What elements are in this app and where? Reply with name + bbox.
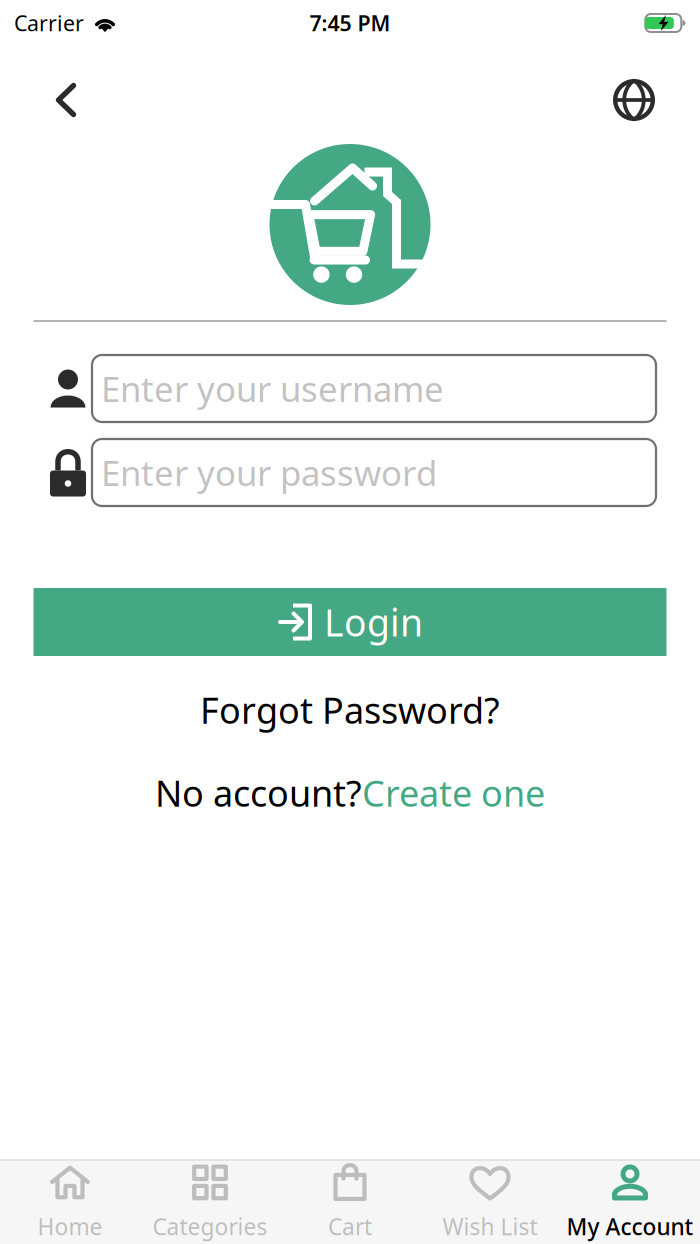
button[interactable]: Cart [280, 1161, 420, 1244]
staticText: Enter your username [101, 365, 444, 411]
staticText: Forgot Password? [200, 686, 500, 734]
staticText: Categories [152, 1211, 267, 1241]
button[interactable]: Categories [140, 1161, 280, 1244]
button[interactable]: Forgot Password? [176, 678, 524, 742]
staticText: My Account [566, 1211, 693, 1241]
button[interactable]: My Account [560, 1161, 700, 1244]
button[interactable]: Create one [362, 763, 545, 823]
button[interactable]: Login [33, 588, 666, 656]
button[interactable]: Wish List [420, 1161, 560, 1244]
staticText: Wish List [442, 1211, 537, 1241]
staticText: Cart [328, 1211, 372, 1241]
staticText: No account? [155, 769, 362, 817]
staticText: Create one [362, 769, 545, 817]
button[interactable]: Back [33, 67, 99, 133]
staticText: Enter your password [101, 449, 437, 495]
staticText: Home [37, 1211, 102, 1241]
button[interactable]: Enter your username [92, 355, 656, 422]
staticText: 7:45 PM [309, 9, 390, 37]
staticText: Login [324, 597, 423, 647]
button[interactable]: Home [0, 1161, 140, 1244]
button[interactable]: Language [601, 67, 667, 133]
staticText: Carrier [14, 9, 84, 37]
button[interactable]: Enter your password [92, 439, 656, 506]
